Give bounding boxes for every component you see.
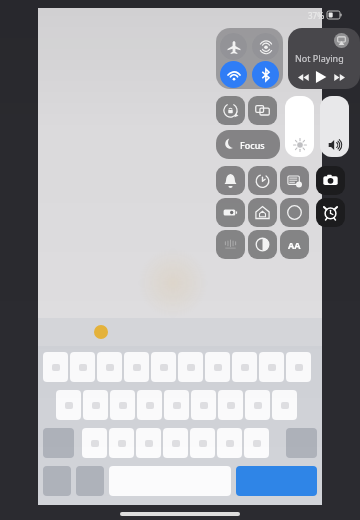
button[interactable]: Next [332, 70, 346, 84]
button[interactable] [252, 33, 279, 60]
button[interactable]: Timer [248, 166, 277, 195]
button[interactable]: Play [313, 69, 329, 85]
button[interactable]: Dark Mode [248, 230, 277, 259]
button[interactable]: Screen Mirroring [248, 96, 277, 125]
button[interactable]: Low Power Mode [216, 198, 245, 227]
button[interactable] [220, 61, 247, 88]
staticText: AA [288, 239, 301, 251]
button[interactable]: Brightness [285, 96, 314, 157]
button[interactable]: Guided Access [280, 198, 309, 227]
staticText: Not Playing [295, 52, 344, 64]
staticText: Focus [240, 139, 265, 151]
button[interactable]: Rotation Lock [216, 96, 245, 125]
button[interactable]: AirPlay [288, 28, 360, 89]
button[interactable]: Alarm [316, 198, 345, 227]
button[interactable]: Text Size [280, 230, 309, 259]
button[interactable] [252, 61, 279, 88]
staticText: 37% [308, 10, 324, 21]
button[interactable]: Volume [320, 96, 349, 157]
button[interactable]: Hearing [216, 230, 245, 259]
button[interactable]: AirPlay [334, 33, 349, 48]
button[interactable]: Notes [280, 166, 309, 195]
button[interactable]: Focus [216, 130, 280, 159]
button[interactable] [220, 33, 247, 60]
button[interactable]: Home [248, 198, 277, 227]
button[interactable]: Camera [316, 166, 345, 195]
button[interactable]: Silent Mode [216, 166, 245, 195]
button[interactable]: Previous [296, 70, 310, 84]
